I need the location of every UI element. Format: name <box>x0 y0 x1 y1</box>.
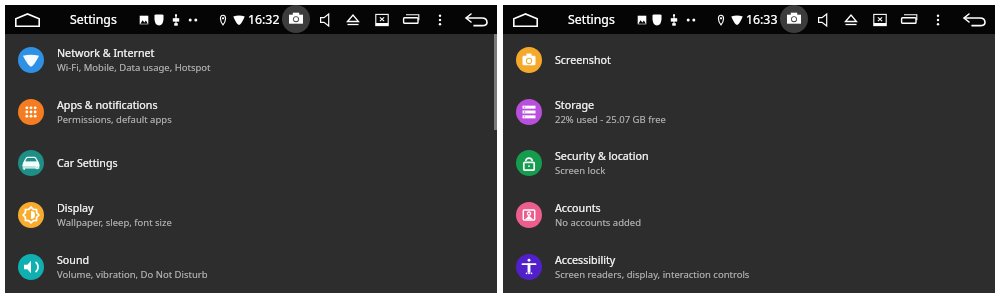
button[interactable]: Wi-Fi <box>227 5 251 34</box>
button[interactable]: Back <box>963 5 987 34</box>
button[interactable]: Settings <box>70 11 117 28</box>
button[interactable]: Close screen <box>370 5 394 34</box>
staticText: Network & Internet <box>57 46 155 61</box>
button[interactable]: Back <box>465 5 489 34</box>
button[interactable]: Security & location <box>503 137 995 189</box>
staticText: Wi-Fi, Mobile, Data usage, Hotspot <box>57 61 211 74</box>
staticText: Sound <box>57 253 90 268</box>
button[interactable]: Photos <box>132 5 156 34</box>
button[interactable]: Storage <box>503 86 995 138</box>
button[interactable]: Location <box>211 5 235 34</box>
button[interactable]: Home <box>12 5 42 34</box>
button[interactable]: Protected <box>147 5 171 34</box>
staticText: 22% used - 25.07 GB free <box>555 113 666 126</box>
button[interactable]: Photos <box>630 5 654 34</box>
button[interactable]: Accessibility <box>503 241 995 293</box>
button[interactable]: More options <box>926 5 950 34</box>
button[interactable]: Apps & notifications <box>5 86 497 138</box>
button[interactable]: Volume <box>811 5 835 34</box>
staticText: Display <box>57 201 94 216</box>
button[interactable]: Car Settings <box>5 137 497 189</box>
button[interactable]: Protected <box>645 5 669 34</box>
button[interactable]: Screenshot <box>780 5 808 33</box>
staticText: No accounts added <box>555 216 642 229</box>
button[interactable]: Screenshot <box>503 34 995 86</box>
staticText: 16:32 <box>248 11 280 28</box>
button[interactable]: Recents <box>897 5 921 34</box>
button[interactable]: Wi-Fi <box>725 5 749 34</box>
button[interactable]: Accounts <box>503 189 995 241</box>
button[interactable]: More options <box>428 5 452 34</box>
button[interactable]: Settings <box>568 11 615 28</box>
staticText: Wallpaper, sleep, font size <box>57 216 172 229</box>
button[interactable]: More <box>679 5 703 34</box>
staticText: Screenshot <box>555 53 611 68</box>
button[interactable]: Network & Internet <box>5 34 497 86</box>
staticText: Security & location <box>555 149 649 164</box>
staticText: 16:33 <box>746 11 778 28</box>
staticText: Accessibility <box>555 253 616 268</box>
staticText: Screen readers, display, interaction con… <box>555 268 750 281</box>
button[interactable]: Volume <box>313 5 337 34</box>
button[interactable]: Close screen <box>868 5 892 34</box>
staticText: Volume, vibration, Do Not Disturb <box>57 268 208 281</box>
button[interactable]: USB <box>662 5 686 34</box>
staticText: Apps & notifications <box>57 98 158 113</box>
button[interactable]: Recents <box>399 5 423 34</box>
button[interactable]: Home <box>510 5 540 34</box>
button[interactable]: More <box>181 5 205 34</box>
staticText: Car Settings <box>57 156 118 171</box>
button[interactable]: Eject <box>341 5 365 34</box>
staticText: Screen lock <box>555 164 606 177</box>
button[interactable]: Screenshot <box>282 5 310 33</box>
button[interactable]: Location <box>709 5 733 34</box>
staticText: Accounts <box>555 201 601 216</box>
staticText: Storage <box>555 98 594 113</box>
staticText: Permissions, default apps <box>57 113 172 126</box>
button[interactable]: Sound <box>5 241 497 293</box>
button[interactable]: Display <box>5 189 497 241</box>
button[interactable]: USB <box>164 5 188 34</box>
button[interactable]: Eject <box>839 5 863 34</box>
